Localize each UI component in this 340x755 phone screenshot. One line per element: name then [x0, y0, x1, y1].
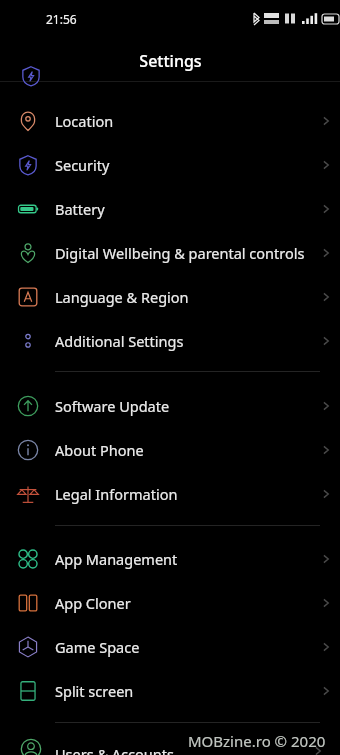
- button[interactable]: App Management: [0, 537, 340, 581]
- staticText: About Phone: [55, 440, 311, 460]
- button[interactable]: About Phone: [0, 428, 340, 472]
- staticText: Language & Region: [55, 287, 311, 307]
- button[interactable]: Users & Accounts: [0, 735, 340, 755]
- staticText: App Cloner: [55, 593, 311, 613]
- button[interactable]: Digital Wellbeing & parental controls: [0, 231, 340, 275]
- staticText: Software Update: [55, 396, 311, 416]
- button[interactable]: Game Space: [0, 625, 340, 669]
- button[interactable]: Additional Settings: [0, 319, 340, 363]
- staticText: Security: [55, 155, 311, 175]
- staticText: Legal Information: [55, 484, 311, 504]
- button[interactable]: Split screen: [0, 669, 340, 713]
- staticText: 21:56: [46, 11, 77, 27]
- staticText: Battery: [55, 199, 311, 219]
- button[interactable]: App Cloner: [0, 581, 340, 625]
- staticText: Settings: [139, 50, 202, 72]
- staticText: App Management: [55, 549, 311, 569]
- button[interactable]: Language & Region: [0, 275, 340, 319]
- staticText: Users & Accounts: [55, 744, 174, 755]
- staticText: Game Space: [55, 637, 311, 657]
- staticText: Additional Settings: [55, 331, 311, 351]
- button[interactable]: Battery: [0, 187, 340, 231]
- button[interactable]: [0, 77, 340, 99]
- staticText: Split screen: [55, 681, 311, 701]
- button[interactable]: Legal Information: [0, 472, 340, 516]
- button[interactable]: Software Update: [0, 384, 340, 428]
- staticText: Digital Wellbeing & parental controls: [55, 243, 311, 263]
- staticText: MOBzine.ro © 2020: [188, 731, 326, 751]
- button[interactable]: Location: [0, 99, 340, 143]
- staticText: Location: [55, 111, 311, 131]
- button[interactable]: Security: [0, 143, 340, 187]
